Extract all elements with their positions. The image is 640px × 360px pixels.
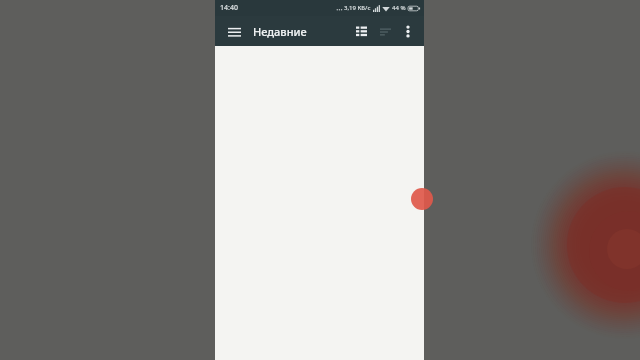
staticText: 44 % (392, 4, 406, 12)
staticText: 14:40 (220, 3, 238, 13)
button[interactable]: Open navigation drawer (223, 20, 245, 42)
staticText: 3,19 КБ/с (344, 4, 371, 12)
button[interactable]: Sort (374, 20, 396, 42)
button[interactable]: Change view (350, 20, 372, 42)
button[interactable]: More options (397, 20, 419, 42)
staticText: Недавние (253, 24, 307, 39)
button[interactable]: Create (411, 188, 433, 210)
